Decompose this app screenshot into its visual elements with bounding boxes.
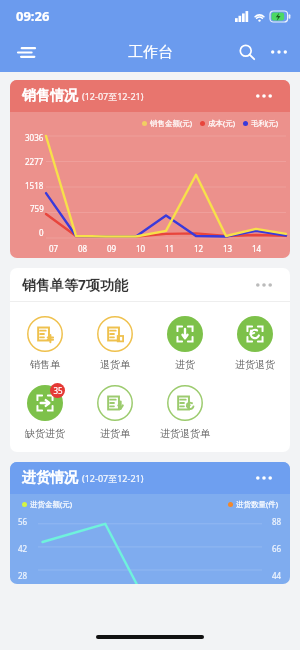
- staticText: 进货退货: [235, 358, 275, 371]
- staticText: 进货数量(件): [236, 499, 278, 509]
- staticText: 毛利(元): [251, 118, 278, 128]
- staticText: 88: [272, 516, 282, 527]
- button[interactable]: More options: [264, 37, 294, 67]
- button[interactable]: 35: [10, 379, 80, 442]
- staticText: 进货: [175, 358, 195, 371]
- staticText: 0: [39, 227, 44, 238]
- staticText: 66: [272, 543, 282, 554]
- button[interactable]: 退货单: [80, 310, 150, 373]
- staticText: 销售金额(元): [150, 118, 192, 128]
- staticText: 13: [223, 243, 233, 254]
- staticText: 35: [53, 385, 63, 396]
- staticText: 成本(元): [208, 118, 235, 128]
- staticText: 销售单等7项功能: [22, 275, 129, 294]
- button[interactable]: 销售单: [10, 310, 80, 373]
- staticText: 进货金额(元): [30, 499, 72, 509]
- staticText: 28: [18, 570, 28, 581]
- button[interactable]: 进货单: [80, 379, 150, 442]
- staticText: 08: [78, 243, 88, 254]
- staticText: 进货单: [100, 427, 130, 440]
- staticText: 09:26: [16, 7, 50, 25]
- staticText: 缺货进货: [25, 427, 65, 440]
- button[interactable]: 进货情况: [10, 462, 290, 584]
- staticText: 1518: [25, 180, 44, 191]
- staticText: (12-07至12-21): [82, 472, 144, 484]
- button[interactable]: 销售情况: [10, 80, 290, 258]
- staticText: 44: [272, 570, 282, 581]
- button[interactable]: Menu: [8, 34, 44, 70]
- staticText: 退货单: [100, 358, 130, 371]
- staticText: 42: [18, 543, 28, 554]
- staticText: 销售情况: [22, 87, 78, 105]
- staticText: 07: [49, 243, 59, 254]
- button[interactable]: More: [250, 276, 278, 294]
- button[interactable]: More: [250, 469, 278, 487]
- staticText: 56: [18, 516, 28, 527]
- staticText: 2277: [25, 156, 44, 167]
- button[interactable]: 进货退货单: [150, 379, 220, 442]
- staticText: 09: [107, 243, 117, 254]
- staticText: (12-07至12-21): [82, 90, 144, 102]
- button[interactable]: 进货: [150, 310, 220, 373]
- staticText: 12: [194, 243, 204, 254]
- button[interactable]: Search: [230, 35, 264, 69]
- button[interactable]: 进货退货: [220, 310, 290, 373]
- staticText: 销售单: [30, 358, 60, 371]
- staticText: 工作台: [128, 43, 173, 62]
- staticText: 14: [252, 243, 262, 254]
- staticText: 3036: [25, 132, 44, 143]
- staticText: 759: [30, 203, 44, 214]
- staticText: 10: [136, 243, 146, 254]
- staticText: 进货情况: [22, 469, 78, 487]
- button[interactable]: More: [250, 87, 278, 105]
- staticText: 11: [165, 243, 175, 254]
- staticText: 进货退货单: [160, 427, 210, 440]
